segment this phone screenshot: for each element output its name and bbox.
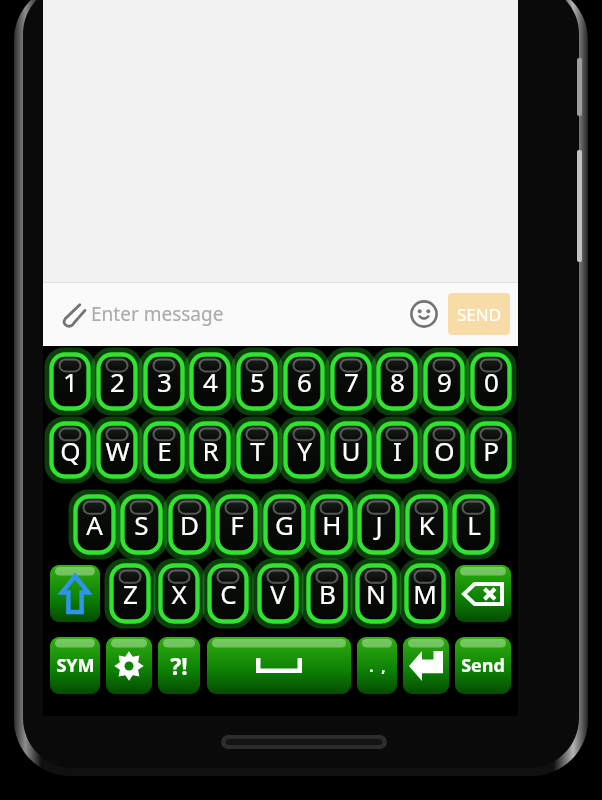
staticText: C — [220, 576, 237, 611]
staticText: L — [467, 507, 481, 542]
button[interactable]: T — [235, 420, 279, 480]
button[interactable]: Send — [452, 634, 514, 697]
button[interactable]: 8 — [375, 351, 419, 412]
staticText: U — [341, 433, 361, 468]
staticText: 7 — [344, 364, 359, 399]
button[interactable]: 7 — [329, 351, 373, 412]
staticText: SEND — [457, 303, 502, 326]
staticText: 5 — [250, 364, 265, 399]
staticText: Send — [461, 653, 505, 678]
staticText: Y — [297, 433, 312, 468]
button[interactable]: R — [188, 420, 232, 480]
button[interactable]: V — [256, 562, 300, 625]
button[interactable]: N — [354, 562, 398, 625]
staticText: I — [393, 433, 402, 468]
staticText: X — [171, 576, 187, 611]
button[interactable]: W — [95, 420, 139, 480]
staticText: 2 — [110, 364, 125, 399]
staticText: 0 — [484, 364, 499, 399]
staticText: SYM — [56, 653, 95, 678]
staticText: N — [366, 576, 386, 611]
button[interactable]: 2 — [95, 351, 139, 412]
button[interactable]: Enter message — [91, 282, 404, 346]
staticText: M — [413, 576, 437, 611]
staticText: W — [105, 433, 130, 468]
staticText: 6 — [297, 364, 312, 399]
staticText: J — [375, 507, 383, 542]
staticText: T — [250, 433, 265, 468]
staticText: B — [319, 576, 336, 611]
staticText: P — [483, 433, 499, 468]
button[interactable]: B — [305, 562, 349, 625]
button[interactable]: Attach file — [53, 295, 91, 333]
staticText: D — [180, 507, 199, 542]
staticText: R — [202, 433, 219, 468]
staticText: 3 — [157, 364, 172, 399]
button[interactable]: F — [214, 493, 259, 556]
staticText: S — [134, 507, 149, 542]
button[interactable]: 6 — [282, 351, 326, 412]
button[interactable]: C — [206, 562, 250, 625]
staticText: O — [434, 433, 455, 468]
button[interactable]: L — [451, 493, 496, 556]
button[interactable]: Shift — [47, 562, 103, 625]
button[interactable]: P — [469, 420, 513, 480]
staticText: . , — [369, 656, 386, 676]
button[interactable]: O — [422, 420, 466, 480]
button[interactable]: Y — [282, 420, 326, 480]
staticText: 4 — [203, 364, 218, 399]
staticText: ?! — [170, 650, 188, 681]
button[interactable]: K — [404, 493, 449, 556]
button[interactable]: U — [329, 420, 373, 480]
button[interactable]: SYM — [47, 634, 103, 697]
button[interactable]: H — [309, 493, 354, 556]
button[interactable]: M — [403, 562, 447, 625]
staticText: H — [322, 507, 342, 542]
button[interactable]: I — [375, 420, 419, 480]
staticText: Q — [60, 433, 81, 468]
button[interactable]: Space — [204, 634, 354, 697]
staticText: F — [230, 507, 244, 542]
staticText: A — [86, 507, 103, 542]
button[interactable]: Q — [48, 420, 92, 480]
button[interactable]: A — [72, 493, 117, 556]
button[interactable]: 0 — [469, 351, 513, 412]
button[interactable]: D — [167, 493, 212, 556]
staticText: V — [270, 576, 286, 611]
button[interactable]: X — [157, 562, 201, 625]
staticText: G — [275, 507, 294, 542]
staticText: 1 — [63, 364, 78, 399]
button[interactable]: 1 — [48, 351, 92, 412]
button[interactable]: Settings — [103, 634, 155, 697]
button[interactable]: S — [119, 493, 164, 556]
button[interactable]: . , — [354, 634, 400, 697]
button[interactable]: 4 — [188, 351, 232, 412]
button[interactable]: E — [142, 420, 186, 480]
staticText: 8 — [390, 364, 405, 399]
button[interactable]: ?! — [155, 634, 203, 697]
button[interactable]: SEND — [448, 293, 510, 335]
staticText: Enter message — [91, 301, 224, 327]
button[interactable]: Enter — [400, 634, 452, 697]
button[interactable]: J — [356, 493, 401, 556]
button[interactable]: 3 — [142, 351, 186, 412]
staticText: E — [157, 433, 172, 468]
staticText: K — [418, 507, 435, 542]
button[interactable]: Backspace — [452, 562, 514, 625]
button[interactable]: G — [262, 493, 307, 556]
button[interactable]: 9 — [422, 351, 466, 412]
button[interactable]: Z — [108, 562, 152, 625]
staticText: 9 — [437, 364, 452, 399]
button[interactable]: 5 — [235, 351, 279, 412]
button[interactable]: Emoji — [404, 294, 444, 334]
staticText: Z — [123, 576, 138, 611]
